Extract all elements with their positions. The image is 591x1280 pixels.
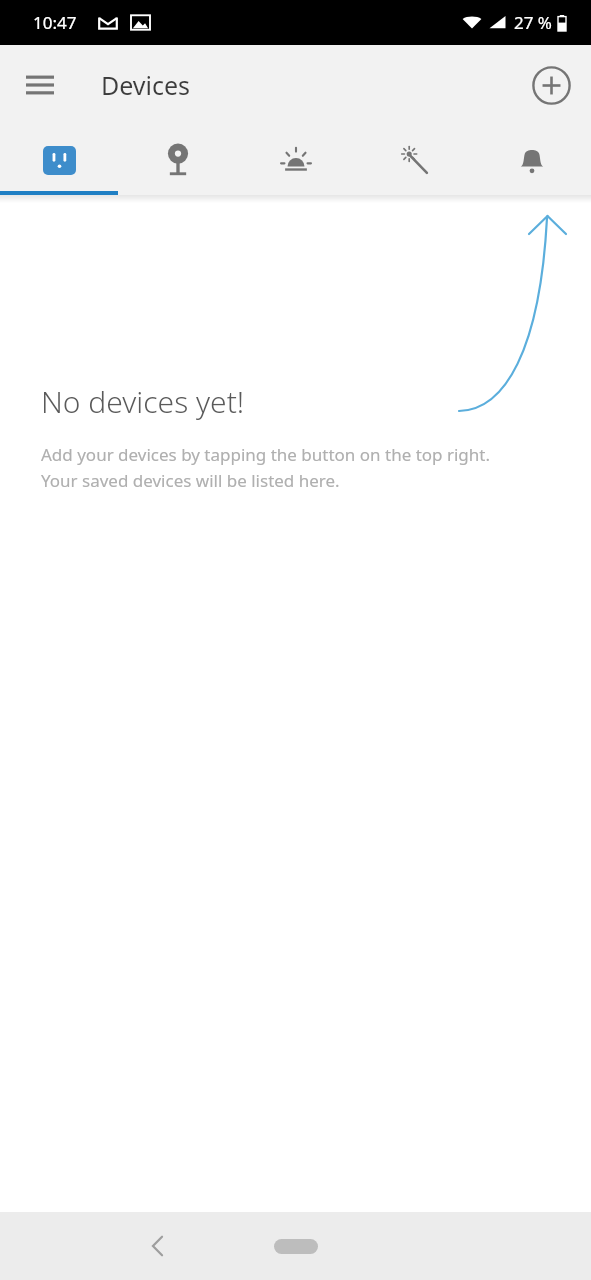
- other: Sensors: [166, 144, 190, 176]
- button[interactable]: Home: [261, 1226, 331, 1266]
- staticText: No devices yet!: [41, 381, 245, 422]
- other: Notifications: [518, 145, 546, 175]
- button[interactable]: Scenes: [355, 125, 473, 195]
- other: Schedules: [279, 146, 313, 174]
- button[interactable]: Add device: [525, 59, 577, 111]
- button[interactable]: Schedules: [237, 125, 355, 195]
- button[interactable]: Back: [131, 1220, 183, 1272]
- button[interactable]: Outlets: [0, 125, 119, 195]
- staticText: 27 %: [514, 11, 552, 34]
- button[interactable]: Menu: [14, 59, 66, 111]
- button[interactable]: Notifications: [473, 125, 591, 195]
- other: Scenes: [399, 145, 429, 175]
- button[interactable]: Sensors: [119, 125, 237, 195]
- staticText: 10:47: [33, 11, 77, 34]
- other: Outlets: [43, 146, 76, 175]
- staticText: Devices: [101, 68, 191, 102]
- staticText: Add your devices by tapping the button o…: [41, 443, 491, 492]
